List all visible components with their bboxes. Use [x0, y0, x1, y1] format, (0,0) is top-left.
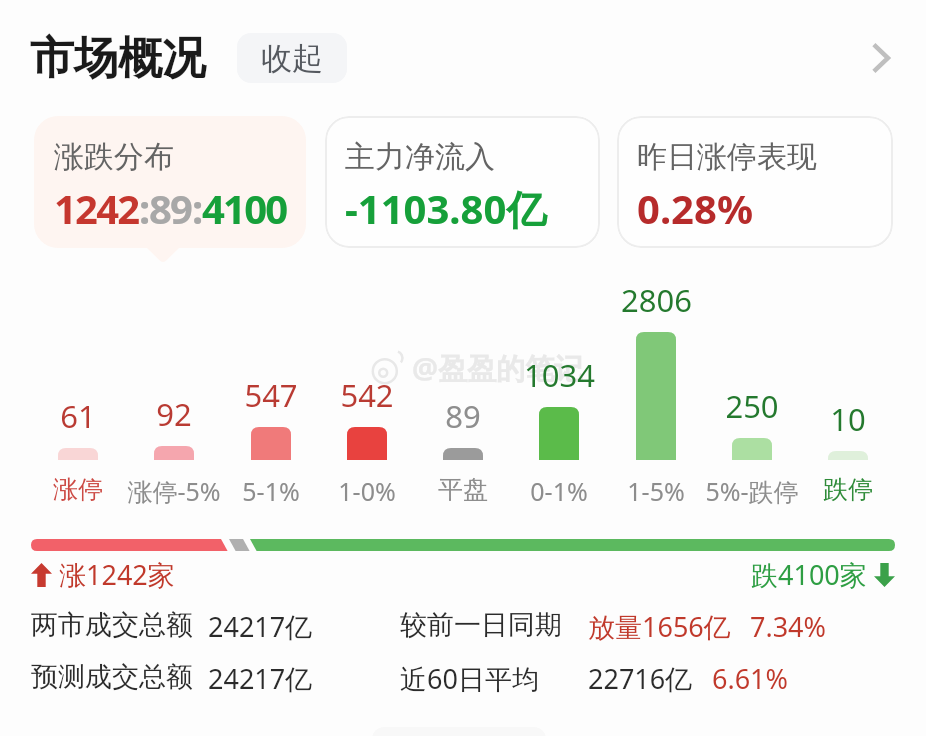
- staticText: 24217亿: [208, 608, 313, 645]
- staticText: 92: [156, 393, 192, 435]
- staticText: 昨日涨停表现: [637, 138, 817, 176]
- staticText: 主力净流入: [345, 138, 495, 176]
- staticText: 4100: [202, 181, 287, 235]
- staticText: 22716亿: [588, 660, 693, 697]
- staticText: 两市成交总额: [31, 608, 193, 642]
- staticText: 1-5%: [627, 474, 685, 508]
- button[interactable]: 收起: [237, 33, 347, 83]
- staticText: 1242: [54, 181, 139, 235]
- staticText: 近60日平均: [400, 660, 539, 697]
- staticText: 平盘: [438, 474, 488, 505]
- staticText: :: [139, 181, 149, 235]
- staticText: 跌停: [823, 474, 873, 505]
- staticText: 89: [445, 395, 481, 437]
- button[interactable]: More: [850, 28, 910, 88]
- staticText: 5-1%: [242, 474, 300, 508]
- staticText: 547: [244, 374, 298, 416]
- button[interactable]: 涨跌分布: [34, 116, 306, 248]
- staticText: :: [192, 181, 202, 235]
- staticText: 89: [149, 181, 192, 235]
- staticText: 61: [60, 395, 96, 437]
- staticText: 放量1656亿: [588, 608, 731, 645]
- staticText: 0.28%: [637, 181, 753, 235]
- staticText: 0-1%: [530, 474, 588, 508]
- staticText: -1103.80亿: [345, 181, 547, 236]
- staticText: 10: [830, 398, 866, 440]
- staticText: 542: [340, 374, 394, 416]
- staticText: 5%-跌停: [705, 474, 799, 508]
- staticText: 涨停: [53, 474, 103, 505]
- staticText: @盈盈的笔记: [412, 348, 584, 388]
- staticText: 6.61%: [712, 660, 789, 697]
- staticText: 涨停-5%: [127, 474, 221, 508]
- staticText: 收起: [261, 39, 323, 78]
- staticText: 1-0%: [338, 474, 396, 508]
- staticText: 250: [725, 385, 779, 427]
- staticText: 较前一日同期: [400, 608, 562, 642]
- staticText: 1034: [524, 354, 595, 396]
- staticText: 24217亿: [208, 660, 313, 697]
- button[interactable]: 昨日涨停表现: [617, 116, 893, 248]
- staticText: 7.34%: [750, 608, 827, 645]
- staticText: 市场概况: [30, 31, 206, 86]
- staticText: 2806: [621, 279, 692, 321]
- staticText: 跌4100家: [751, 556, 867, 593]
- staticText: 预测成交总额: [31, 660, 193, 694]
- staticText: 涨跌分布: [54, 138, 174, 176]
- staticText: 涨1242家: [59, 556, 175, 593]
- button[interactable]: 主力净流入: [325, 116, 600, 248]
